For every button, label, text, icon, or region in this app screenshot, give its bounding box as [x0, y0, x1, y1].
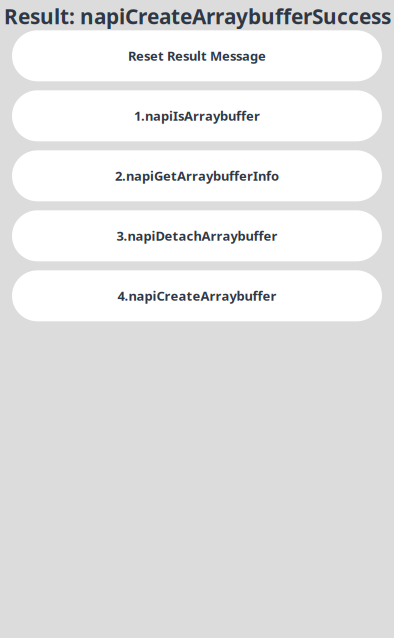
staticText: Reset Result Message [128, 47, 266, 65]
button[interactable]: 4.napiCreateArraybuffer [12, 270, 382, 321]
staticText: 3.napiDetachArraybuffer [116, 227, 277, 245]
staticText: 2.napiGetArraybufferInfo [115, 167, 279, 185]
button[interactable]: 2.napiGetArraybufferInfo [12, 150, 382, 201]
staticText: 1.napiIsArraybuffer [134, 107, 260, 125]
button[interactable]: 3.napiDetachArraybuffer [12, 210, 382, 261]
staticText: 4.napiCreateArraybuffer [117, 287, 276, 305]
button[interactable]: 1.napiIsArraybuffer [12, 90, 382, 141]
button[interactable]: Reset Result Message [12, 30, 382, 81]
staticText: Result: napiCreateArraybufferSuccess [4, 2, 391, 30]
